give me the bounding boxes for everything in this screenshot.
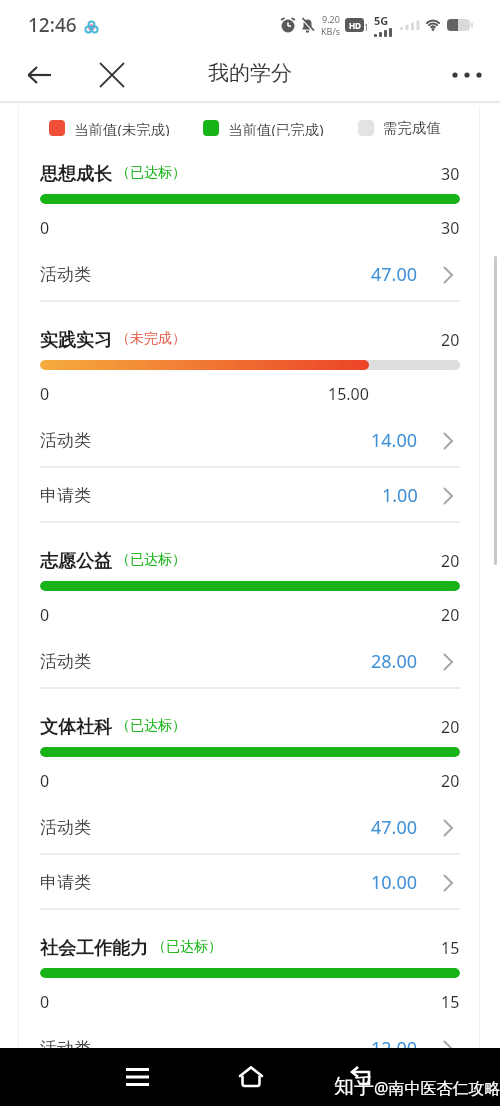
staticText: 15 xyxy=(441,937,460,957)
staticText: 1 xyxy=(364,22,369,33)
button[interactable]: 申请类 xyxy=(40,855,460,910)
staticText: 活动类 xyxy=(40,1038,91,1048)
button[interactable] xyxy=(337,1052,387,1102)
staticText: 0 xyxy=(40,604,50,622)
staticText: 14.00 xyxy=(371,428,418,453)
staticText: （未完成） xyxy=(116,330,186,348)
staticText: 47.00 xyxy=(371,815,418,840)
staticText: 15.00 xyxy=(328,383,369,401)
staticText: 30 xyxy=(441,163,460,183)
staticText: 活动类 xyxy=(40,817,91,838)
staticText: 志愿公益 xyxy=(40,550,112,570)
staticText: 当前值(未完成) xyxy=(74,119,170,136)
staticText: 12:46 xyxy=(28,12,77,38)
button[interactable]: 活动类 xyxy=(40,1021,460,1048)
staticText: 实践实习 xyxy=(40,329,112,349)
staticText: 我的学分 xyxy=(208,60,292,86)
staticText: 20 xyxy=(441,550,460,570)
staticText: 5G xyxy=(374,13,389,28)
staticText: 活动类 xyxy=(40,651,91,672)
staticText: （已达标） xyxy=(116,551,186,569)
staticText: 活动类 xyxy=(40,430,91,451)
staticText: 0 xyxy=(40,991,50,1009)
staticText: 10.00 xyxy=(371,870,418,895)
staticText: 当前值(已完成) xyxy=(228,119,324,136)
staticText: 知乎 xyxy=(334,1074,374,1099)
staticText: （已达标） xyxy=(152,938,222,956)
staticText: 申请类 xyxy=(40,872,91,893)
staticText: KB/s xyxy=(321,25,341,37)
staticText: @南中医杏仁攻略 xyxy=(374,1077,500,1099)
staticText: 20 xyxy=(441,716,460,736)
button[interactable] xyxy=(92,55,132,95)
button[interactable] xyxy=(445,55,489,95)
staticText: 1.00 xyxy=(382,483,418,508)
staticText: 社会工作能力 xyxy=(40,937,148,957)
staticText: 28.00 xyxy=(371,649,418,674)
button[interactable]: 活动类 xyxy=(40,247,460,302)
staticText: 15 xyxy=(441,991,460,1009)
staticText: 9.20 xyxy=(322,13,340,25)
button[interactable]: 活动类 xyxy=(40,800,460,855)
button[interactable] xyxy=(20,55,60,95)
staticText: 需完成值 xyxy=(383,119,441,136)
staticText: 0 xyxy=(40,770,50,788)
staticText: 0 xyxy=(40,383,50,401)
button[interactable]: 申请类 xyxy=(40,468,460,523)
staticText: 思想成长 xyxy=(40,163,112,183)
staticText: （已达标） xyxy=(116,717,186,735)
button[interactable]: 活动类 xyxy=(40,634,460,689)
button[interactable]: 活动类 xyxy=(40,413,460,468)
staticText: 20 xyxy=(441,604,460,622)
button[interactable] xyxy=(112,1052,162,1102)
staticText: HD xyxy=(349,20,361,31)
staticText: 文体社科 xyxy=(40,716,112,736)
staticText: 活动类 xyxy=(40,264,91,285)
staticText: 0 xyxy=(40,217,50,235)
staticText: 申请类 xyxy=(40,485,91,506)
staticText: 20 xyxy=(441,329,460,349)
staticText: （已达标） xyxy=(116,164,186,182)
staticText: 47.00 xyxy=(371,262,418,287)
staticText: 12.00 xyxy=(371,1036,418,1048)
button[interactable] xyxy=(226,1052,276,1102)
staticText: 20 xyxy=(441,770,460,788)
staticText: 30 xyxy=(441,217,460,235)
